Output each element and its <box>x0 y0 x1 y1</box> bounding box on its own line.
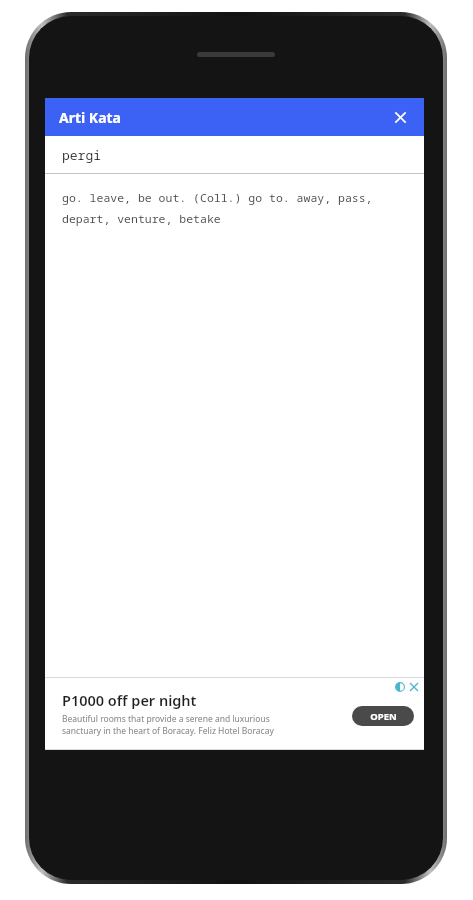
staticText: go. leave, be out. (Coll.) go to. away, … <box>62 190 400 227</box>
staticText: Beautiful rooms that provide a serene an… <box>62 713 270 725</box>
staticText: sanctuary in the heart of Boracay. Feliz… <box>62 725 274 737</box>
button[interactable]: Ad choices <box>45 678 424 749</box>
button[interactable]: Close <box>384 101 416 133</box>
button[interactable]: Ad choices <box>394 681 406 693</box>
button[interactable]: Close ad <box>408 681 420 693</box>
staticText: Arti Kata <box>59 108 121 127</box>
staticText: P1000 off per night <box>62 690 197 710</box>
staticText: OPEN <box>370 710 397 723</box>
staticText: pergi <box>62 146 102 164</box>
button[interactable]: pergi <box>45 136 424 173</box>
button[interactable]: OPEN <box>352 706 414 726</box>
